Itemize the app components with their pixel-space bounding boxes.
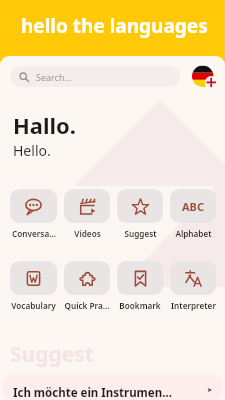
staticText: Search... <box>36 71 72 83</box>
button[interactable]: Search... <box>10 66 180 87</box>
staticText: Conversa... <box>12 228 56 239</box>
staticText: Quick Pra... <box>64 300 110 311</box>
staticText: Alphabet <box>175 228 212 239</box>
button[interactable]: Suggest <box>117 189 163 239</box>
staticText: Interpreter <box>171 300 216 311</box>
staticText: Videos <box>74 228 101 239</box>
button[interactable]: Vocabulary <box>10 261 57 311</box>
staticText: Bookmark <box>119 300 161 311</box>
button[interactable]: Ich möchte ein Instrumen... <box>2 375 223 400</box>
button[interactable]: Videos <box>64 189 110 239</box>
button[interactable]: Conversa... <box>10 189 57 239</box>
button[interactable]: Interpreter <box>170 261 216 311</box>
button[interactable]: Quick Pra... <box>64 261 110 311</box>
button[interactable]: ABC <box>170 189 216 239</box>
staticText: ABC <box>182 199 204 214</box>
staticText: Suggest <box>10 340 94 369</box>
staticText: Vocabulary <box>11 300 56 311</box>
staticText: Hallo. <box>13 110 77 140</box>
button[interactable]: Change language <box>192 64 217 89</box>
button[interactable]: Bookmark <box>117 261 163 311</box>
staticText: hello the languages <box>21 13 208 39</box>
staticText: Hello. <box>13 141 51 160</box>
staticText: Suggest <box>124 228 157 239</box>
staticText: Ich möchte ein Instrumen... <box>13 385 206 400</box>
